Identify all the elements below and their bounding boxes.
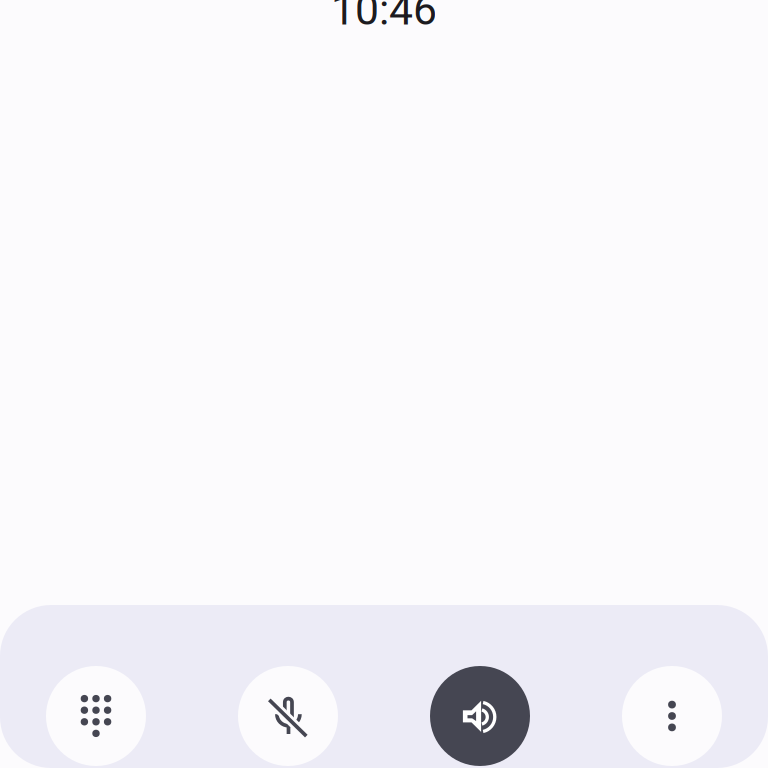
button[interactable]: Dial pad — [46, 666, 146, 766]
staticText: 10:46 — [331, 0, 437, 35]
button[interactable]: More options — [622, 666, 722, 766]
button[interactable]: Unmute — [238, 666, 338, 766]
button[interactable]: Speaker — [430, 666, 530, 766]
